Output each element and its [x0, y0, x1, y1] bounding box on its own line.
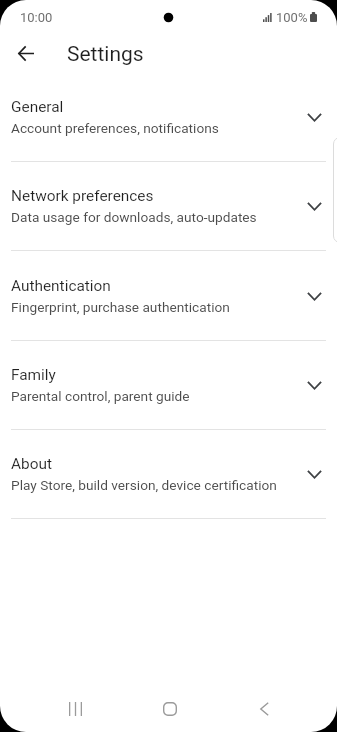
button[interactable]: About [0, 429, 337, 518]
staticText: About [11, 455, 52, 473]
staticText: Authentication [11, 277, 111, 295]
button[interactable]: Home [146, 685, 194, 732]
staticText: Network preferences [11, 187, 154, 205]
button[interactable]: Recent apps [51, 685, 99, 732]
staticText: Fingerprint, purchase authentication [11, 299, 230, 315]
staticText: Parental control, parent guide [11, 388, 190, 404]
button[interactable]: Family [0, 340, 337, 429]
button[interactable]: Back [240, 685, 288, 732]
staticText: Settings [67, 42, 144, 67]
button[interactable]: Authentication [0, 251, 337, 340]
staticText: Family [11, 366, 56, 384]
button[interactable]: Back [6, 33, 46, 73]
staticText: 100% [276, 10, 308, 25]
button[interactable]: General [0, 72, 337, 161]
button[interactable]: Network preferences [0, 161, 337, 250]
staticText: Data usage for downloads, auto-updates [11, 209, 257, 225]
staticText: 10:00 [20, 10, 53, 25]
staticText: General [11, 98, 64, 116]
staticText: Play Store, build version, device certif… [11, 477, 277, 493]
staticText: Account preferences, notifications [11, 120, 219, 136]
